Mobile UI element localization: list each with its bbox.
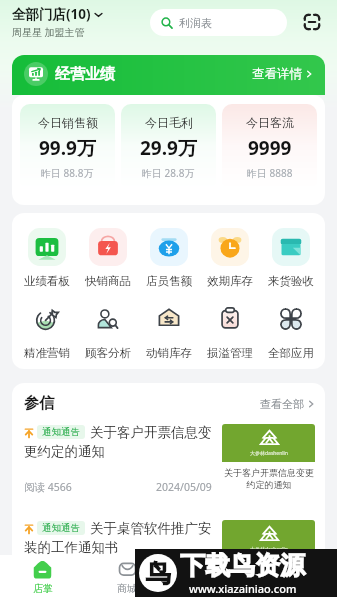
- staticText: 下载鸟资源: [180, 550, 305, 581]
- staticText: 2024/05/09: [156, 480, 212, 494]
- staticText: 我的: [285, 582, 305, 595]
- staticText: 店员售额: [146, 274, 192, 288]
- button[interactable]: 全部应用: [260, 307, 321, 360]
- staticText: 快销商品: [85, 274, 131, 288]
- button[interactable]: 店员售额: [138, 228, 199, 288]
- staticText: 业绩看板: [24, 274, 70, 288]
- button[interactable]: 今日客流: [222, 104, 317, 189]
- button[interactable]: 顾客分析: [77, 307, 138, 360]
- button[interactable]: 损溢管理: [199, 307, 260, 360]
- staticText: 通知通告: [42, 522, 80, 534]
- button[interactable]: 店掌: [0, 555, 85, 600]
- staticText: 精准营销: [24, 346, 70, 360]
- button[interactable]: 利润表: [150, 9, 287, 36]
- button[interactable]: ##关于桌管软件推广安装的工作通知书: [24, 520, 315, 591]
- staticText: 利润表: [179, 16, 212, 30]
- button[interactable]: 我的: [253, 555, 337, 600]
- staticText: 昨日 8888: [247, 166, 293, 180]
- button[interactable]: 业绩看板: [16, 228, 77, 288]
- staticText: 今日毛利: [145, 115, 193, 130]
- staticText: www.xiazainiao.com: [189, 581, 297, 596]
- staticText: 商城: [117, 582, 137, 595]
- button[interactable]: 今日毛利: [121, 104, 216, 189]
- button[interactable]: 效期库存: [199, 228, 260, 288]
- staticText: 昨日 28.8万: [142, 166, 195, 180]
- staticText: 动销库存: [146, 346, 192, 360]
- staticText: 2024/05/08: [156, 576, 212, 590]
- button[interactable]: 经营业绩: [12, 55, 325, 95]
- button[interactable]: 动销库存: [138, 307, 199, 360]
- staticText: 9999: [248, 135, 292, 161]
- staticText: ##关于桌管软件推广安装的工作通知书: [24, 520, 214, 556]
- staticText: 阅读 4566: [24, 480, 72, 494]
- staticText: 来货验收: [268, 274, 314, 288]
- staticText: 全部应用: [268, 346, 314, 360]
- staticText: 大参林dashenlin: [250, 546, 288, 553]
- staticText: 昨日 88.8万: [41, 166, 94, 180]
- staticText: 大参林dashenlin: [250, 450, 288, 457]
- button[interactable]: 商城: [85, 555, 169, 600]
- staticText: 通知通告: [42, 426, 80, 438]
- staticText: 今日客流: [246, 115, 294, 130]
- staticText: 今日销售额: [38, 115, 98, 130]
- staticText: 顾客分析: [85, 346, 131, 360]
- button[interactable]: 精准营销: [16, 307, 77, 360]
- staticText: 工作台: [196, 582, 226, 595]
- staticText: 鸟: [146, 558, 171, 589]
- button[interactable]: 工作台: [169, 555, 253, 600]
- staticText: 99.9万: [39, 135, 96, 161]
- button[interactable]: 来货验收: [260, 228, 321, 288]
- staticText: 阅读 3201: [24, 576, 72, 590]
- staticText: 查看详情: [252, 66, 302, 82]
- button[interactable]: Scan: [301, 11, 323, 33]
- staticText: ##关于客户开票信息变更约定的通知: [24, 424, 214, 460]
- staticText: 效期库存: [207, 274, 253, 288]
- staticText: 关于桌管软件推广安装 的工作通知书: [224, 563, 314, 587]
- button[interactable]: 全部门店(10): [12, 5, 103, 39]
- button[interactable]: 查看全部: [260, 397, 315, 411]
- staticText: 经营业绩: [55, 65, 115, 84]
- staticText: 29.9万: [140, 135, 197, 161]
- staticText: 店掌: [33, 582, 53, 595]
- button[interactable]: ##关于客户开票信息变更约定的通知: [24, 424, 315, 495]
- staticText: 关于客户开票信息变更 约定的通知: [224, 467, 314, 491]
- button[interactable]: 今日销售额: [20, 104, 115, 189]
- staticText: 损溢管理: [207, 346, 253, 360]
- staticText: 查看全部: [260, 397, 304, 411]
- staticText: 参信: [24, 394, 54, 413]
- staticText: 周星星 加盟主管: [12, 25, 85, 39]
- button[interactable]: 快销商品: [77, 228, 138, 288]
- staticText: 全部门店(10): [12, 5, 91, 23]
